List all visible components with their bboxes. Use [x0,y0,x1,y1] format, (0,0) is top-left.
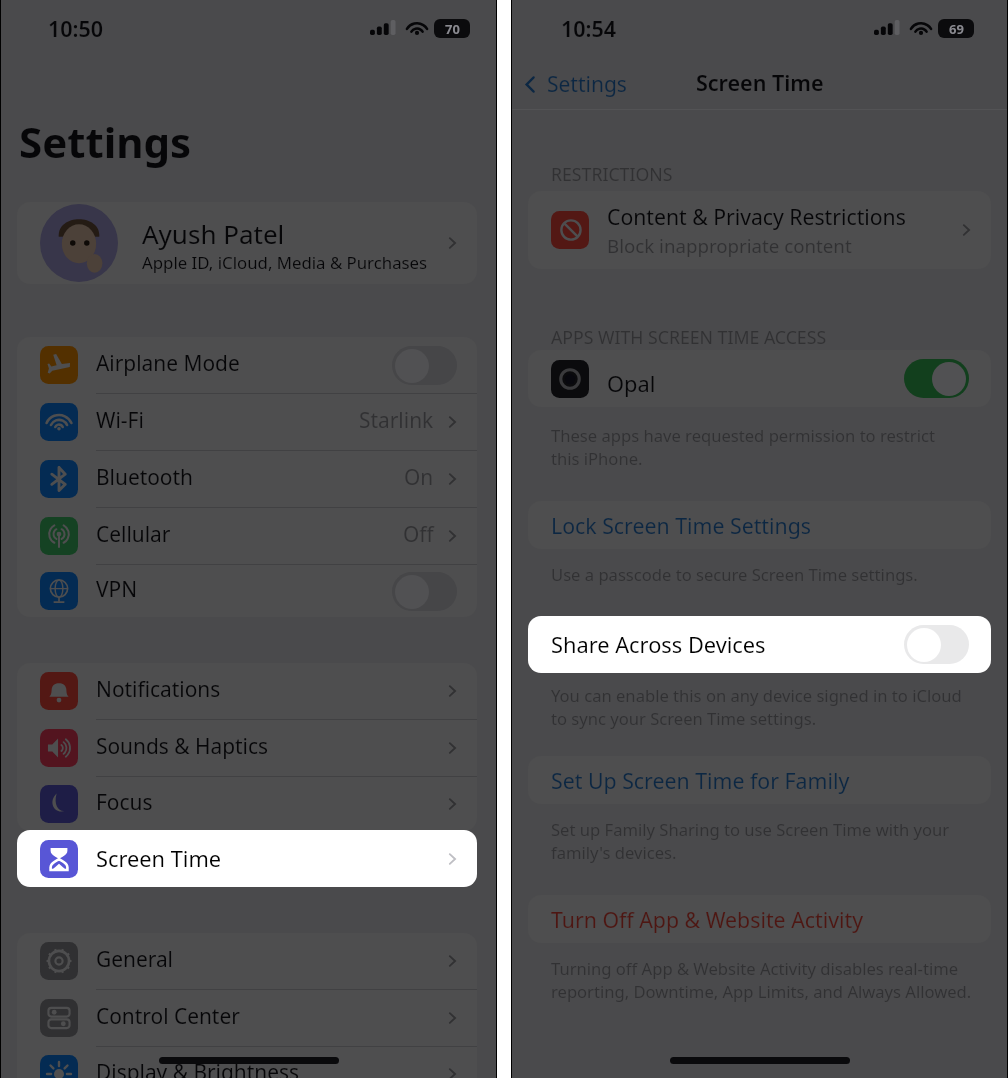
staticText: Airplane Mode [96,349,240,377]
button[interactable]: Cellular [17,508,477,564]
staticText: On [404,463,434,491]
staticText: Lock Screen Time Settings [551,511,812,540]
staticText: Turn Off App & Website Activity [551,905,864,934]
button[interactable]: Content & Privacy Restrictions [528,191,991,269]
staticText: Share Across Devices [551,630,766,660]
button[interactable]: Off [904,625,969,664]
staticText: Use a passcode to secure Screen Time set… [551,563,1008,586]
staticText: Set up Family Sharing to use Screen Time… [551,818,1008,863]
button[interactable]: Display & Brightness [17,1047,477,1078]
button[interactable]: Screen Time [17,830,477,887]
button[interactable]: Opal [528,350,991,407]
button[interactable]: Notifications [17,663,477,719]
staticText: Ayush Patel [142,216,285,251]
staticText: Screen Time [96,844,222,874]
staticText: Block inappropriate content [607,233,852,258]
staticText: Content & Privacy Restrictions [607,202,906,231]
staticText: Cellular [96,520,171,548]
button[interactable]: Ayush Patel [17,202,477,284]
staticText: APPS WITH SCREEN TIME ACCESS [551,325,827,349]
button[interactable]: Share Across Devices [528,616,991,673]
staticText: 70 [445,20,460,38]
staticText: Set Up Screen Time for Family [551,766,850,795]
button[interactable]: Sounds & Haptics [17,720,477,776]
staticText: Opal [607,369,656,399]
staticText: Off [403,520,434,548]
staticText: Apple ID, iCloud, Media & Purchases [142,251,428,274]
staticText: Bluetooth [96,463,193,491]
staticText: Display & Brightness [96,1058,300,1078]
button[interactable]: Wi-Fi [17,394,477,450]
button[interactable]: On [904,359,969,398]
staticText: 69 [949,20,964,38]
staticText: Settings [19,113,192,170]
button[interactable]: General [17,933,477,989]
button[interactable]: Focus [17,777,477,831]
button[interactable]: Off [392,346,457,385]
button[interactable]: VPN [17,565,477,617]
staticText: Sounds & Haptics [96,732,268,760]
button[interactable]: Bluetooth [17,451,477,507]
staticText: 10:50 [48,14,104,43]
button[interactable]: Settings [517,67,631,102]
staticText: Focus [96,788,153,816]
button[interactable]: Lock Screen Time Settings [528,501,991,549]
button[interactable]: Set Up Screen Time for Family [528,756,991,804]
staticText: Turning off App & Website Activity disab… [551,957,1008,1002]
button[interactable]: Off [392,572,457,611]
staticText: Notifications [96,675,221,703]
button[interactable]: Turn Off App & Website Activity [528,895,991,943]
staticText: Settings [547,70,627,99]
button[interactable]: Airplane Mode [17,337,477,393]
staticText: These apps have requested permission to … [551,424,1008,469]
staticText: Control Center [96,1002,240,1030]
staticText: Screen Time [696,68,824,97]
staticText: General [96,945,174,973]
staticText: RESTRICTIONS [551,162,673,186]
staticText: Wi-Fi [96,406,144,434]
staticText: 10:54 [561,14,617,43]
staticText: Starlink [359,406,434,434]
staticText: You can enable this on any device signed… [551,684,1008,729]
button[interactable]: Control Center [17,990,477,1046]
staticText: VPN [96,575,138,603]
